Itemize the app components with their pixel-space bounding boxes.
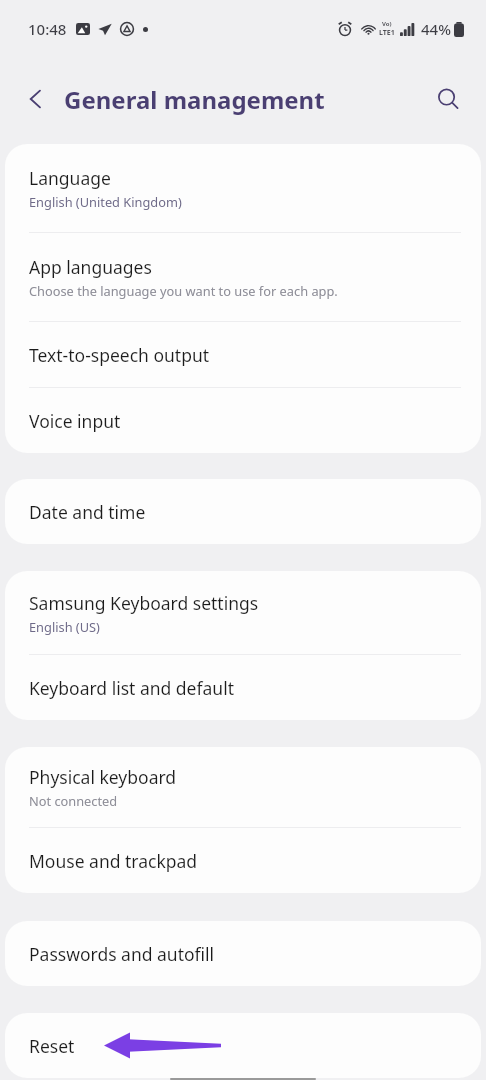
button[interactable]: Samsung Keyboard settings bbox=[5, 571, 481, 654]
staticText: 10:48 bbox=[28, 19, 67, 39]
staticText: Reset bbox=[29, 1034, 75, 1058]
staticText: Physical keyboard bbox=[29, 765, 177, 789]
staticText: Keyboard list and default bbox=[29, 676, 234, 700]
staticText: General management bbox=[64, 83, 325, 116]
button[interactable]: Reset bbox=[5, 1013, 481, 1078]
button[interactable]: Voice input bbox=[5, 388, 481, 453]
staticText: 44% bbox=[421, 19, 451, 39]
staticText: Samsung Keyboard settings bbox=[29, 591, 259, 615]
button[interactable]: Language bbox=[5, 144, 481, 232]
button[interactable]: Date and time bbox=[5, 479, 481, 544]
staticText: Date and time bbox=[29, 500, 146, 524]
staticText: LTE1 bbox=[379, 28, 395, 38]
button[interactable]: Passwords and autofill bbox=[5, 921, 481, 986]
button[interactable]: App languages bbox=[5, 233, 481, 321]
staticText: App languages bbox=[29, 255, 152, 279]
staticText: Choose the language you want to use for … bbox=[29, 282, 338, 299]
button[interactable]: Text-to-speech output bbox=[5, 322, 481, 387]
button[interactable]: Search bbox=[426, 77, 470, 121]
staticText: Not connected bbox=[29, 792, 118, 809]
button[interactable]: Back bbox=[14, 77, 58, 121]
button[interactable]: Keyboard list and default bbox=[5, 655, 481, 720]
staticText: English (US) bbox=[29, 618, 100, 635]
staticText: Mouse and trackpad bbox=[29, 849, 198, 873]
staticText: Language bbox=[29, 166, 111, 190]
staticText: English (United Kingdom) bbox=[29, 193, 182, 210]
staticText: Text-to-speech output bbox=[29, 343, 210, 367]
staticText: Voice input bbox=[29, 409, 121, 433]
staticText: Passwords and autofill bbox=[29, 942, 215, 966]
button[interactable]: Physical keyboard bbox=[5, 747, 481, 827]
button[interactable]: Mouse and trackpad bbox=[5, 828, 481, 893]
staticText: Vo) bbox=[382, 20, 392, 28]
